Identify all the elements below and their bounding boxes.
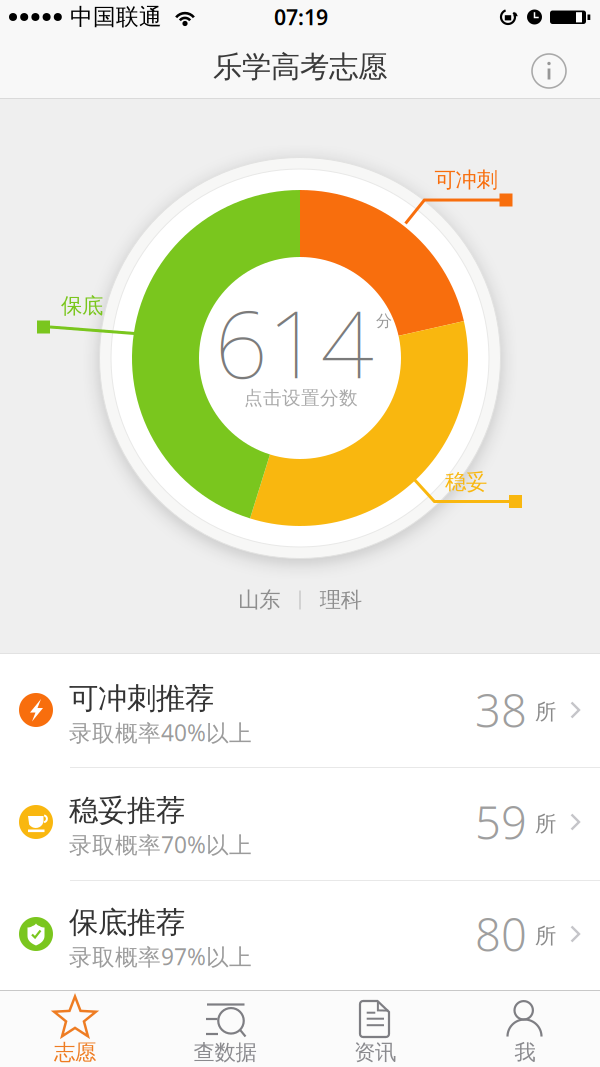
staticText: 80 [475,904,527,964]
staticText: 录取概率97%以上 [69,941,252,972]
button[interactable]: 保底推荐 [0,878,600,990]
staticText: 稳妥 [445,469,487,495]
staticText: 07:19 [274,3,328,31]
staticText: 分 [376,311,392,331]
staticText: 资讯 [354,1039,396,1066]
staticText: 38 [475,680,527,740]
staticText: 中国联通 [70,3,162,31]
staticText: 乐学高考志愿 [213,49,387,85]
staticText: 614 [214,280,373,404]
staticText: 查数据 [193,1039,256,1066]
staticText: 稳妥推荐 [69,792,185,828]
staticText: 59 [475,792,527,852]
staticText: 所 [535,699,556,725]
button[interactable]: 资讯 [300,990,450,1067]
staticText: 志愿 [54,1039,96,1066]
button[interactable]: 我 [450,990,600,1067]
staticText: 可冲刺 [434,167,497,193]
staticText: 我 [514,1039,535,1066]
staticText: 山东 [238,587,280,613]
staticText: 点击设置分数 [244,386,358,409]
button[interactable]: 点击设置分数 [199,257,401,459]
button[interactable]: 查数据 [150,990,300,1067]
button[interactable]: 山东 理科 [210,580,390,620]
staticText: 录取概率40%以上 [69,717,252,748]
button[interactable]: 志愿 [0,990,150,1067]
button[interactable]: 稳妥推荐 [0,766,600,878]
button[interactable]: 可冲刺推荐 [0,654,600,766]
staticText: 录取概率70%以上 [69,829,252,860]
staticText: 保底 [61,293,103,319]
staticText: 保底推荐 [69,904,185,940]
staticText: 所 [535,923,556,949]
staticText: 理科 [320,587,362,613]
staticText: 所 [535,811,556,837]
button[interactable]: 关于 [527,49,571,93]
staticText: 可冲刺推荐 [69,680,214,716]
